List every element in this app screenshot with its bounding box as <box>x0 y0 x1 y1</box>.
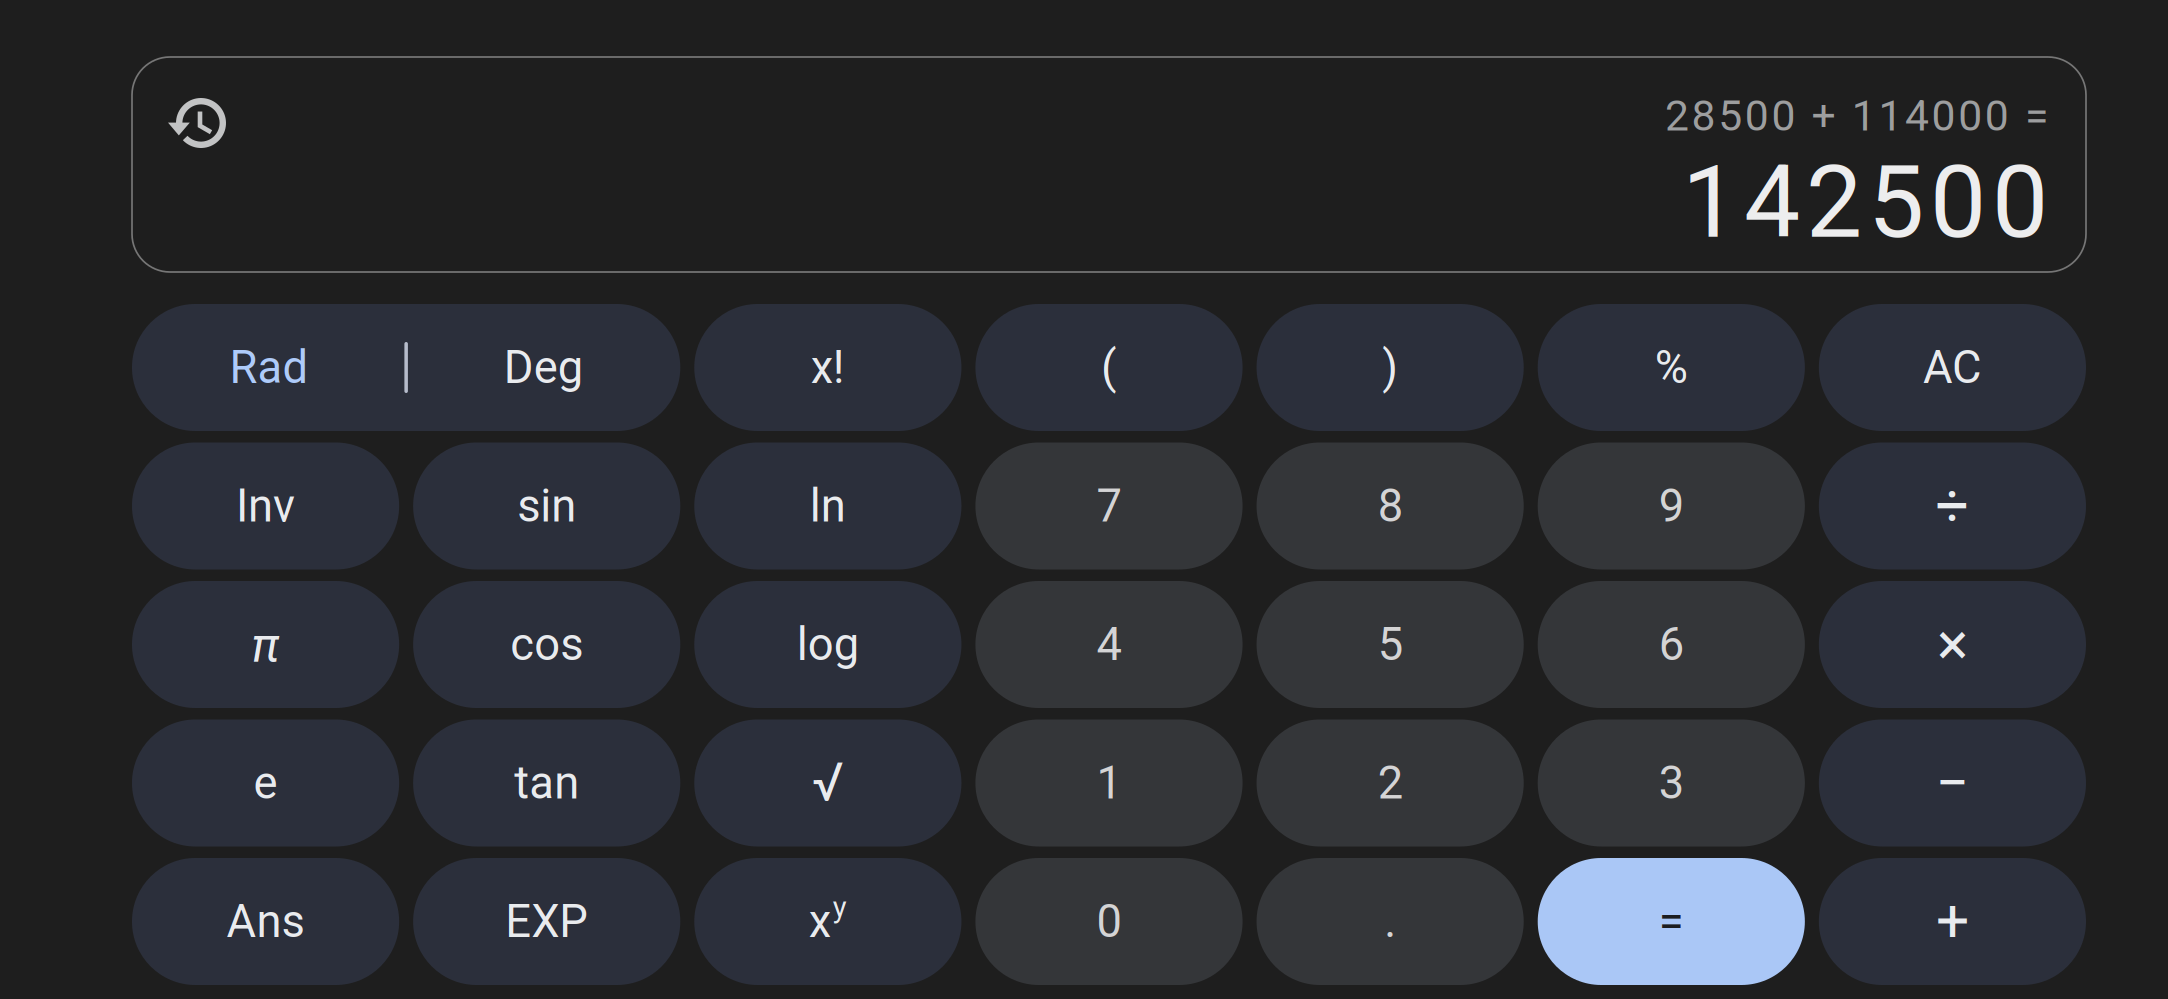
button[interactable]: 0 <box>975 858 1242 985</box>
button[interactable]: ÷ <box>1819 442 2086 569</box>
staticText: Deg <box>504 341 583 394</box>
button[interactable]: log <box>694 581 961 708</box>
button[interactable]: AC <box>1819 304 2086 431</box>
staticText: . <box>1384 895 1396 948</box>
staticText: 142500 <box>1682 144 2048 261</box>
staticText: ln <box>810 479 846 532</box>
staticText: 1 <box>1096 756 1121 809</box>
staticText: 9 <box>1659 479 1684 532</box>
staticText: 2 <box>1378 756 1403 809</box>
staticText: cos <box>510 618 583 671</box>
button[interactable]: . <box>1257 858 1524 985</box>
button[interactable]: 2 <box>1257 719 1524 846</box>
button[interactable]: x <box>694 858 961 985</box>
staticText: ) <box>1382 341 1398 394</box>
staticText: 28500 + 114000 = <box>1665 91 2048 141</box>
button[interactable]: ln <box>694 442 961 569</box>
staticText: % <box>1655 341 1688 394</box>
staticText: − <box>1935 749 1969 817</box>
staticText: ÷ <box>1935 472 1969 540</box>
staticText: Rad <box>230 341 309 394</box>
button[interactable]: 6 <box>1538 581 1805 708</box>
button[interactable]: x! <box>694 304 961 431</box>
staticText: x <box>809 895 831 948</box>
staticText: = <box>1659 895 1684 948</box>
button[interactable]: 5 <box>1257 581 1524 708</box>
staticText: 5 <box>1378 618 1403 671</box>
button[interactable]: 9 <box>1538 442 1805 569</box>
button[interactable]: Ans <box>132 858 399 985</box>
button[interactable]: 8 <box>1257 442 1524 569</box>
button[interactable]: 1 <box>975 719 1242 846</box>
button[interactable]: Rad <box>132 304 680 431</box>
staticText: π <box>252 616 280 673</box>
button[interactable]: History <box>168 98 226 149</box>
button[interactable]: π <box>132 581 399 708</box>
staticText: 4 <box>1096 618 1121 671</box>
button[interactable]: ( <box>975 304 1242 431</box>
button[interactable]: = <box>1538 858 1805 985</box>
staticText: 0 <box>1096 895 1121 948</box>
button[interactable]: e <box>132 719 399 846</box>
button[interactable]: 3 <box>1538 719 1805 846</box>
button[interactable]: Inv <box>132 442 399 569</box>
button[interactable]: × <box>1819 581 2086 708</box>
staticText: ( <box>1101 341 1117 394</box>
staticText: AC <box>1923 341 1982 394</box>
staticText: sin <box>517 479 576 532</box>
staticText: EXP <box>505 895 588 948</box>
staticText: Ans <box>227 895 305 948</box>
button[interactable]: 4 <box>975 581 1242 708</box>
button[interactable]: % <box>1538 304 1805 431</box>
staticText: × <box>1937 610 1968 679</box>
button[interactable]: ) <box>1257 304 1524 431</box>
staticText: tan <box>514 756 579 809</box>
button[interactable]: + <box>1819 858 2086 985</box>
staticText: e <box>254 756 278 809</box>
staticText: Inv <box>236 479 295 532</box>
button[interactable]: EXP <box>413 858 680 985</box>
staticText: + <box>1936 887 1969 956</box>
staticText: 7 <box>1096 479 1121 532</box>
button[interactable]: 7 <box>975 442 1242 569</box>
button[interactable]: √ <box>694 719 961 846</box>
staticText: x! <box>811 341 845 394</box>
staticText: 3 <box>1659 756 1684 809</box>
staticText: 6 <box>1659 618 1684 671</box>
button[interactable]: − <box>1819 719 2086 846</box>
staticText: log <box>797 618 859 671</box>
staticText: 8 <box>1378 479 1403 532</box>
staticText: y <box>833 890 847 925</box>
button[interactable]: cos <box>413 581 680 708</box>
staticText: √ <box>812 751 844 813</box>
button[interactable]: sin <box>413 442 680 569</box>
button[interactable]: tan <box>413 719 680 846</box>
